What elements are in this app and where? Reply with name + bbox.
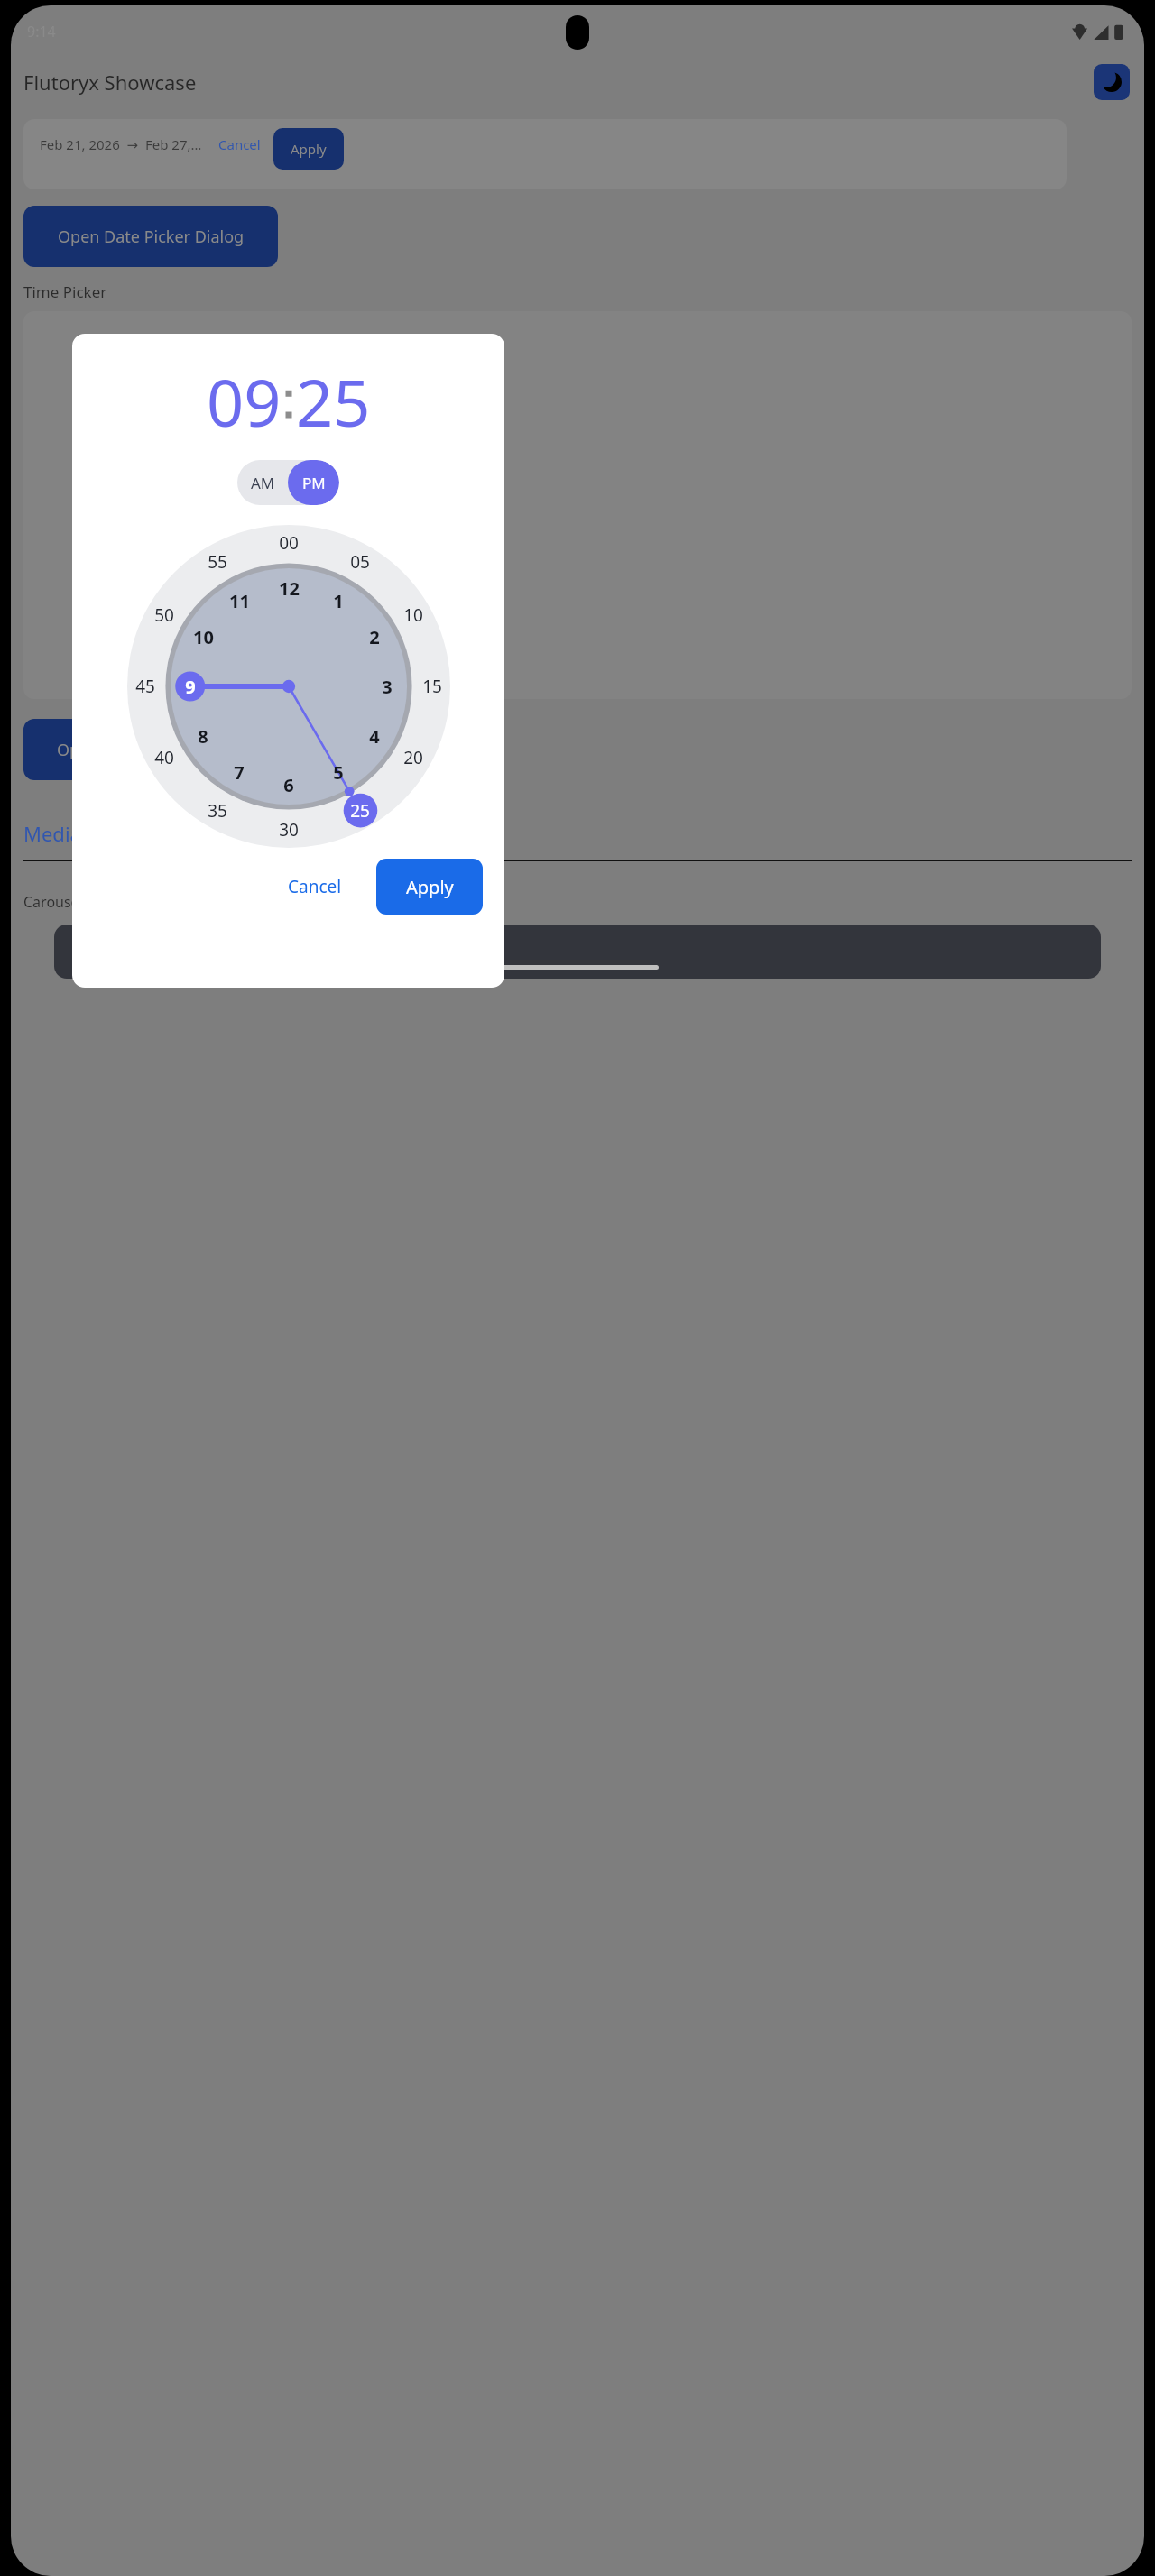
staticText: 1 (333, 589, 344, 613)
staticText: 40 (154, 746, 174, 769)
button[interactable]: PM (288, 460, 339, 505)
staticText: 10 (193, 625, 214, 649)
button[interactable]: 50 (146, 597, 182, 633)
button[interactable]: AM (237, 460, 288, 505)
staticText: 25 (296, 357, 371, 446)
button[interactable]: 10 (185, 619, 221, 655)
button[interactable]: 7 (221, 754, 257, 790)
button[interactable]: Open Date Picker Dialog (23, 206, 278, 267)
button[interactable]: Cancel (218, 135, 261, 153)
staticText: Apply (291, 140, 327, 158)
staticText: 5 (333, 760, 344, 785)
button[interactable]: 9 (172, 668, 208, 704)
staticText: 00 (279, 531, 299, 555)
staticText: 12 (279, 576, 300, 601)
button[interactable]: 5 (320, 754, 356, 790)
button[interactable]: 45 (127, 668, 163, 704)
staticText: Media & Layout (23, 820, 170, 847)
button[interactable]: 15 (414, 668, 450, 704)
staticText: 8 (198, 724, 208, 749)
staticText: Flutoryx Showcase (23, 69, 197, 96)
button[interactable]: 3 (369, 668, 405, 704)
staticText: 7 (234, 760, 245, 785)
staticText: 30 (279, 818, 299, 842)
button[interactable]: 8 (185, 718, 221, 754)
staticText: Open Date Picker Dialog (58, 225, 245, 248)
button[interactable]: 40 (146, 740, 182, 776)
staticText: 11 (229, 589, 250, 613)
staticText: 9 (185, 675, 196, 699)
button[interactable]: 20 (395, 740, 431, 776)
button[interactable]: 2 (356, 619, 393, 655)
button[interactable]: 1 (320, 583, 356, 619)
staticText: Apply (406, 875, 454, 899)
staticText: 9:14 (27, 22, 56, 41)
button[interactable]: Cancel (275, 866, 355, 907)
button[interactable]: 10 (395, 597, 431, 633)
staticText: 3 (382, 675, 393, 699)
button[interactable]: 35 (199, 793, 236, 829)
staticText: 4 (369, 724, 380, 749)
staticText: Cancel (288, 875, 342, 898)
button[interactable]: Apply (273, 128, 344, 170)
staticText: 6 (283, 773, 294, 797)
button[interactable]: 4 (356, 718, 393, 754)
staticText: 20 (403, 746, 423, 769)
staticText: 45 (135, 675, 155, 698)
staticText: Time Picker (23, 281, 107, 302)
staticText: Carousel - "Peek" Viewport & Auto-Play (23, 892, 287, 912)
staticText: 10 (403, 603, 423, 627)
button[interactable]: 25 (342, 793, 378, 829)
staticText: Open Time Picker Dialog (57, 739, 245, 761)
staticText: AM (251, 473, 275, 493)
staticText: Feb 21, 2026 → Feb 27,… (40, 135, 202, 153)
staticText: 15 (422, 675, 442, 698)
button[interactable]: 05 (342, 544, 378, 580)
staticText: 25 (350, 799, 370, 823)
staticText: 35 (208, 799, 227, 823)
button[interactable]: Apply (376, 859, 483, 915)
button[interactable]: 12 (271, 570, 307, 606)
button[interactable]: 6 (271, 767, 307, 803)
button[interactable]: 55 (199, 544, 236, 580)
staticText: 50 (154, 603, 174, 627)
button[interactable]: 30 (271, 812, 307, 848)
button[interactable]: Open Time Picker Dialog (23, 719, 278, 780)
staticText: PM (302, 473, 326, 493)
button[interactable]: Toggle dark mode (1094, 64, 1130, 100)
button[interactable]: 11 (221, 583, 257, 619)
staticText: 2 (369, 625, 380, 649)
staticText: 55 (208, 550, 227, 574)
staticText: 05 (350, 550, 370, 574)
staticText: 09 (207, 357, 282, 446)
button[interactable]: 00 (271, 525, 307, 561)
